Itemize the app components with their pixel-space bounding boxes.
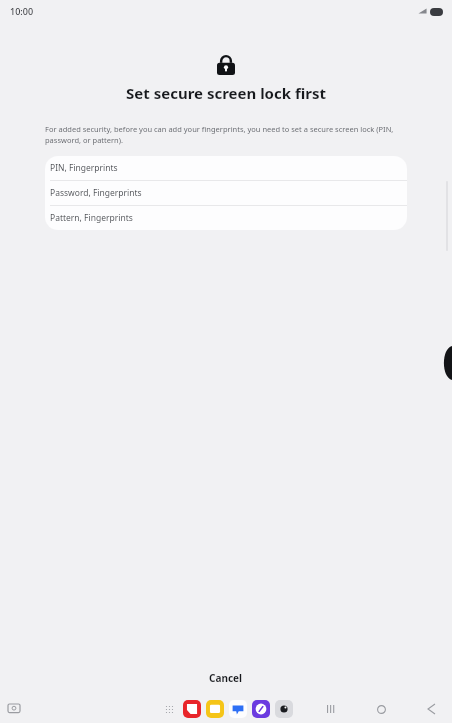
staticText: Pattern, Fingerprints <box>50 212 133 224</box>
staticText: Cancel <box>209 671 243 685</box>
button[interactable]: Pattern, Fingerprints <box>45 206 407 230</box>
staticText: For added security, before you can add y… <box>45 124 407 145</box>
button[interactable]: Cancel <box>187 666 265 690</box>
button[interactable]: Recent apps <box>320 698 342 720</box>
staticText: Password, Fingerprints <box>50 187 142 199</box>
button[interactable]: Internet <box>252 700 270 718</box>
staticText: Set secure screen lock first <box>126 83 326 103</box>
button[interactable]: PIN, Fingerprints <box>45 156 407 180</box>
button[interactable]: Messages <box>229 700 247 718</box>
staticText: PIN, Fingerprints <box>50 162 118 174</box>
button[interactable]: All apps <box>160 700 178 718</box>
button[interactable]: Back <box>420 698 442 720</box>
button[interactable]: Camera <box>275 700 293 718</box>
button[interactable]: Notes <box>183 700 201 718</box>
button[interactable]: Home <box>370 698 392 720</box>
staticText: 10:00 <box>10 5 34 17</box>
button[interactable]: DeX mode <box>4 699 24 719</box>
button[interactable]: Password, Fingerprints <box>45 181 407 205</box>
button[interactable]: Gallery <box>206 700 224 718</box>
